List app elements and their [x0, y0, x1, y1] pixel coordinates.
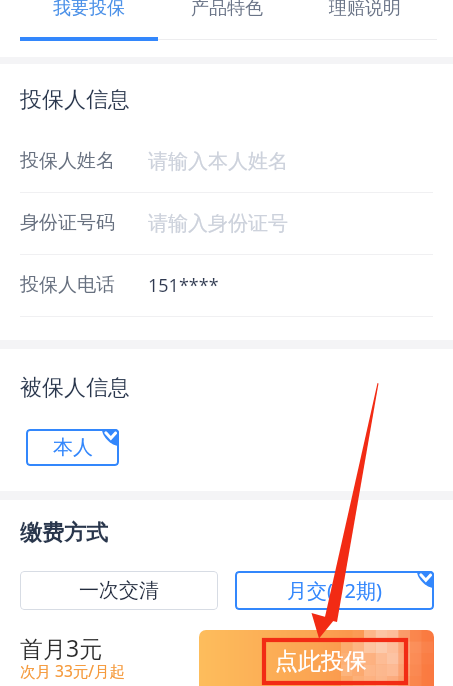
- staticText: 次月 33元/月起: [20, 660, 126, 681]
- button[interactable]: 我要投保: [20, 0, 158, 34]
- button[interactable]: 产品特色: [158, 0, 296, 34]
- staticText: 投保人电话: [20, 273, 115, 297]
- staticText: 缴费方式: [20, 519, 108, 547]
- staticText: 月交(12期): [287, 577, 382, 604]
- button[interactable]: 本人: [26, 429, 119, 466]
- staticText: 151****: [148, 273, 219, 298]
- button[interactable]: 月交(12期): [235, 571, 434, 610]
- staticText: 一次交清: [79, 578, 159, 603]
- staticText: 产品特色: [191, 0, 263, 20]
- staticText: 我要投保: [53, 0, 125, 20]
- staticText: 身份证号码: [20, 211, 115, 235]
- button[interactable]: 理赔说明: [296, 0, 434, 34]
- staticText: 首月3元: [20, 632, 103, 663]
- button[interactable]: 投保人姓名: [20, 140, 433, 182]
- staticText: 点此投保: [275, 647, 367, 676]
- button[interactable]: 投保人电话: [20, 264, 433, 306]
- button[interactable]: 一次交清: [20, 571, 218, 610]
- button[interactable]: 点此投保: [199, 630, 434, 686]
- button[interactable]: 身份证号码: [20, 202, 433, 244]
- staticText: 本人: [53, 435, 93, 460]
- staticText: 投保人信息: [20, 86, 130, 114]
- staticText: 请输入身份证号: [148, 211, 288, 236]
- staticText: 被保人信息: [20, 374, 130, 402]
- staticText: 投保人姓名: [20, 149, 115, 173]
- staticText: 请输入本人姓名: [148, 149, 288, 174]
- staticText: 理赔说明: [329, 0, 401, 20]
